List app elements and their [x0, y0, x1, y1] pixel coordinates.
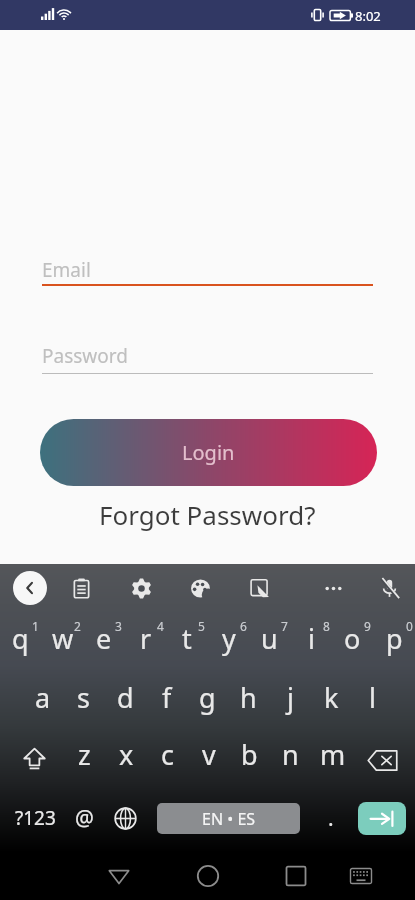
button[interactable]: x	[106, 731, 147, 777]
button[interactable]: e	[83, 615, 124, 661]
staticText: k	[324, 679, 339, 716]
button[interactable]: f	[146, 674, 187, 720]
staticText: t	[182, 620, 192, 657]
button[interactable]: t	[166, 615, 207, 661]
staticText: m	[320, 736, 346, 773]
button[interactable]: y	[208, 615, 249, 661]
staticText: c	[161, 736, 174, 773]
staticText: q	[12, 620, 29, 657]
staticText: p	[386, 620, 403, 657]
staticText: r	[140, 620, 152, 657]
staticText: Password	[42, 343, 128, 369]
button[interactable]: Password	[42, 343, 373, 369]
button[interactable]: @	[64, 796, 104, 840]
staticText: j	[287, 679, 294, 716]
button[interactable]: Enter	[358, 802, 406, 835]
button[interactable]: Email	[42, 257, 373, 283]
button[interactable]: n	[270, 731, 311, 777]
button[interactable]: Recents	[274, 855, 318, 897]
staticText: o	[344, 620, 361, 657]
button[interactable]: p	[374, 615, 415, 661]
button[interactable]: g	[187, 674, 228, 720]
staticText: v	[202, 736, 216, 773]
button[interactable]: z	[64, 731, 105, 777]
staticText: Email	[42, 257, 91, 283]
staticText: .	[328, 804, 334, 833]
button[interactable]: Back	[13, 571, 47, 605]
button[interactable]: k	[311, 674, 352, 720]
button[interactable]: h	[228, 674, 269, 720]
staticText: 4	[157, 618, 164, 632]
button[interactable]: w	[42, 615, 83, 661]
staticText: x	[119, 736, 134, 773]
button[interactable]: .	[311, 796, 351, 840]
button[interactable]: q	[0, 615, 41, 661]
staticText: 9	[364, 618, 371, 632]
button[interactable]: Clipboard	[62, 569, 100, 607]
staticText: u	[261, 620, 278, 657]
staticText: 7	[281, 618, 288, 632]
staticText: w	[52, 620, 74, 657]
staticText: 5	[198, 618, 205, 632]
staticText: 1	[32, 618, 39, 632]
staticText: 3	[115, 618, 122, 632]
button[interactable]: Resize	[240, 569, 278, 607]
button[interactable]: l	[352, 674, 393, 720]
button[interactable]: More options	[314, 569, 352, 607]
staticText: z	[78, 736, 91, 773]
button[interactable]: b	[229, 731, 270, 777]
button[interactable]: Back	[97, 855, 141, 897]
button[interactable]: Home	[186, 855, 230, 897]
button[interactable]: j	[270, 674, 311, 720]
staticText: 8:02	[355, 7, 381, 25]
staticText: 0	[406, 618, 413, 632]
staticText: Login	[182, 439, 235, 466]
staticText: ?123	[15, 805, 56, 831]
staticText: l	[369, 679, 376, 716]
button[interactable]: Login	[40, 419, 377, 486]
button[interactable]: ?123	[8, 796, 62, 840]
staticText: f	[162, 679, 172, 716]
button[interactable]: Backspace	[360, 738, 404, 782]
button[interactable]: Shift	[12, 736, 56, 780]
button[interactable]: o	[332, 615, 373, 661]
staticText: g	[199, 679, 216, 716]
staticText: h	[240, 679, 257, 716]
button[interactable]: Theme	[181, 569, 219, 607]
button[interactable]: Change language	[104, 796, 146, 840]
staticText: d	[117, 679, 134, 716]
staticText: y	[222, 620, 236, 657]
staticText: n	[282, 736, 299, 773]
button[interactable]: u	[249, 615, 290, 661]
button[interactable]: s	[63, 674, 104, 720]
staticText: a	[35, 679, 51, 716]
staticText: e	[96, 620, 112, 657]
button[interactable]: Space	[157, 803, 300, 834]
staticText: @	[75, 804, 94, 833]
button[interactable]: Forgot Password?	[95, 493, 320, 536]
staticText: 6	[240, 618, 247, 632]
button[interactable]: r	[125, 615, 166, 661]
staticText: 8	[323, 618, 330, 632]
staticText: i	[308, 620, 315, 657]
staticText: EN • ES	[202, 808, 256, 830]
staticText: 2	[74, 618, 81, 632]
button[interactable]: i	[291, 615, 332, 661]
button[interactable]: Mute microphone	[370, 569, 408, 607]
button[interactable]: a	[22, 674, 63, 720]
button[interactable]: Hide keyboard	[339, 855, 383, 897]
staticText: b	[241, 736, 258, 773]
button[interactable]: d	[105, 674, 146, 720]
button[interactable]: m	[312, 731, 353, 777]
staticText: s	[77, 679, 90, 716]
button[interactable]: v	[188, 731, 229, 777]
button[interactable]: Settings	[122, 569, 160, 607]
button[interactable]: c	[147, 731, 188, 777]
